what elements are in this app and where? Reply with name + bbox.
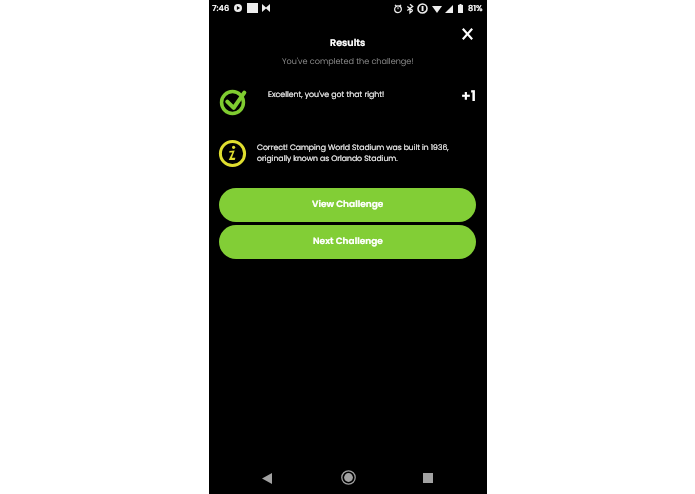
staticText: Results bbox=[330, 36, 366, 49]
staticText: You've completed the challenge! bbox=[282, 55, 414, 66]
button[interactable]: Next Challenge bbox=[219, 225, 476, 259]
button[interactable]: View Challenge bbox=[219, 188, 476, 222]
button[interactable]: Recents bbox=[415, 465, 441, 491]
staticText: 7:46 bbox=[212, 2, 230, 13]
button[interactable]: Home bbox=[335, 464, 361, 490]
staticText: Excellent, you've got that right! bbox=[268, 89, 385, 100]
staticText: +1 bbox=[461, 86, 477, 106]
button[interactable]: Close bbox=[454, 21, 480, 47]
staticText: View Challenge bbox=[312, 198, 384, 211]
staticText: 81% bbox=[468, 2, 483, 13]
staticText: Next Challenge bbox=[313, 235, 383, 248]
button[interactable]: Back bbox=[254, 465, 280, 491]
staticText: Correct! Camping World Stadium was built… bbox=[257, 142, 449, 163]
